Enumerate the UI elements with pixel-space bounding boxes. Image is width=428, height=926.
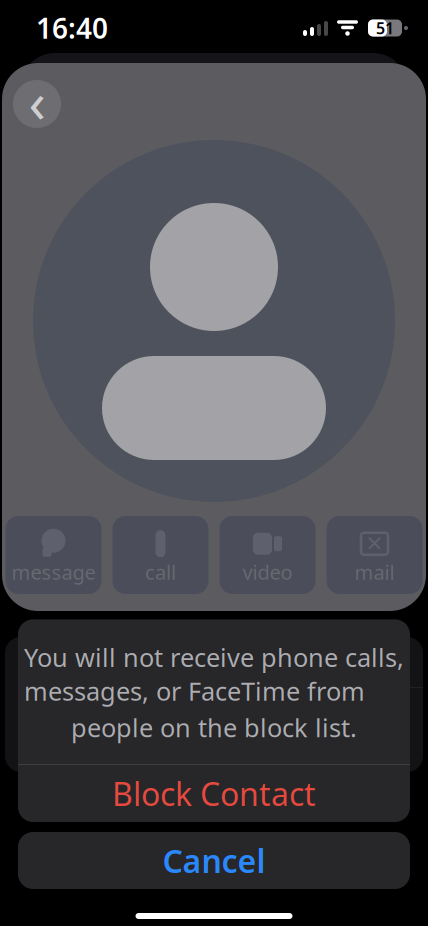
button[interactable]: Share Contact (5, 637, 423, 687)
staticText: Block Contact (112, 772, 316, 815)
staticText: call (145, 559, 176, 585)
staticText: people on the block list. (71, 711, 357, 744)
button[interactable]: message (5, 516, 101, 594)
button[interactable]: Back (13, 80, 61, 128)
staticText: Cancel (162, 839, 265, 882)
staticText: 16:40 (36, 9, 108, 47)
button[interactable]: video (219, 516, 315, 594)
staticText: Create New Contact (23, 693, 299, 732)
button[interactable]: call (112, 516, 208, 594)
button[interactable]: Create New Contact (5, 688, 423, 738)
staticText: message (11, 559, 95, 585)
button[interactable]: Block Contact (18, 765, 410, 822)
staticText: ‹ (28, 64, 45, 138)
staticText: Share Contact (23, 642, 217, 681)
staticText: 51 (376, 17, 394, 39)
staticText: You will not receive phone calls, messag… (24, 640, 404, 708)
staticText: mail (354, 559, 394, 585)
staticText: video (242, 559, 292, 585)
button[interactable]: Cancel (18, 832, 410, 889)
staticText: ✕ (365, 532, 383, 556)
button[interactable]: ✕ (326, 516, 422, 594)
